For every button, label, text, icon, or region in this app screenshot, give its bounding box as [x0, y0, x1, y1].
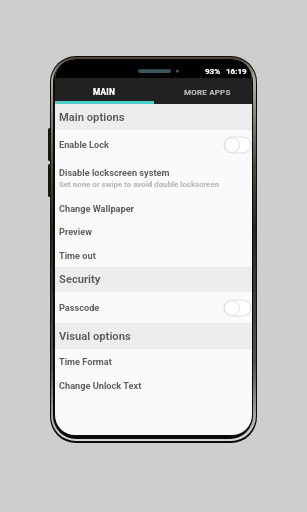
staticText: 93%: [205, 67, 221, 76]
button[interactable]: Change Wallpaper: [55, 197, 252, 220]
staticText: Change Wallpaper: [59, 203, 134, 214]
staticText: 16:19: [226, 67, 247, 76]
button[interactable]: MORE APPS: [153, 78, 252, 104]
staticText: Main options: [59, 111, 125, 124]
staticText: Passcode: [59, 302, 100, 313]
staticText: Disable lockscreen system: [59, 167, 170, 178]
staticText: Preview: [59, 226, 92, 237]
staticText: Change Unlock Text: [59, 380, 142, 391]
button[interactable]: MAIN: [55, 78, 153, 104]
staticText: Visual options: [59, 330, 131, 343]
other: Toggle Enable Lock: [224, 137, 251, 153]
staticText: Security: [59, 273, 101, 286]
staticText: Enable Lock: [59, 139, 109, 150]
staticText: Time out: [59, 250, 96, 261]
staticText: MAIN: [93, 87, 115, 97]
button[interactable]: Disable lockscreen system: [55, 159, 252, 197]
button[interactable]: Time Format: [55, 349, 252, 373]
staticText: Set none or swipe to avoid double locksc…: [59, 180, 220, 189]
staticText: MORE APPS: [184, 88, 231, 97]
button[interactable]: Passcode: [55, 292, 252, 323]
button[interactable]: Preview: [55, 220, 252, 243]
other: Toggle Passcode: [224, 300, 251, 316]
button[interactable]: Enable Lock: [55, 130, 252, 159]
staticText: Time Format: [59, 356, 112, 367]
button[interactable]: Time out: [55, 243, 252, 267]
button[interactable]: Change Unlock Text: [55, 373, 252, 397]
